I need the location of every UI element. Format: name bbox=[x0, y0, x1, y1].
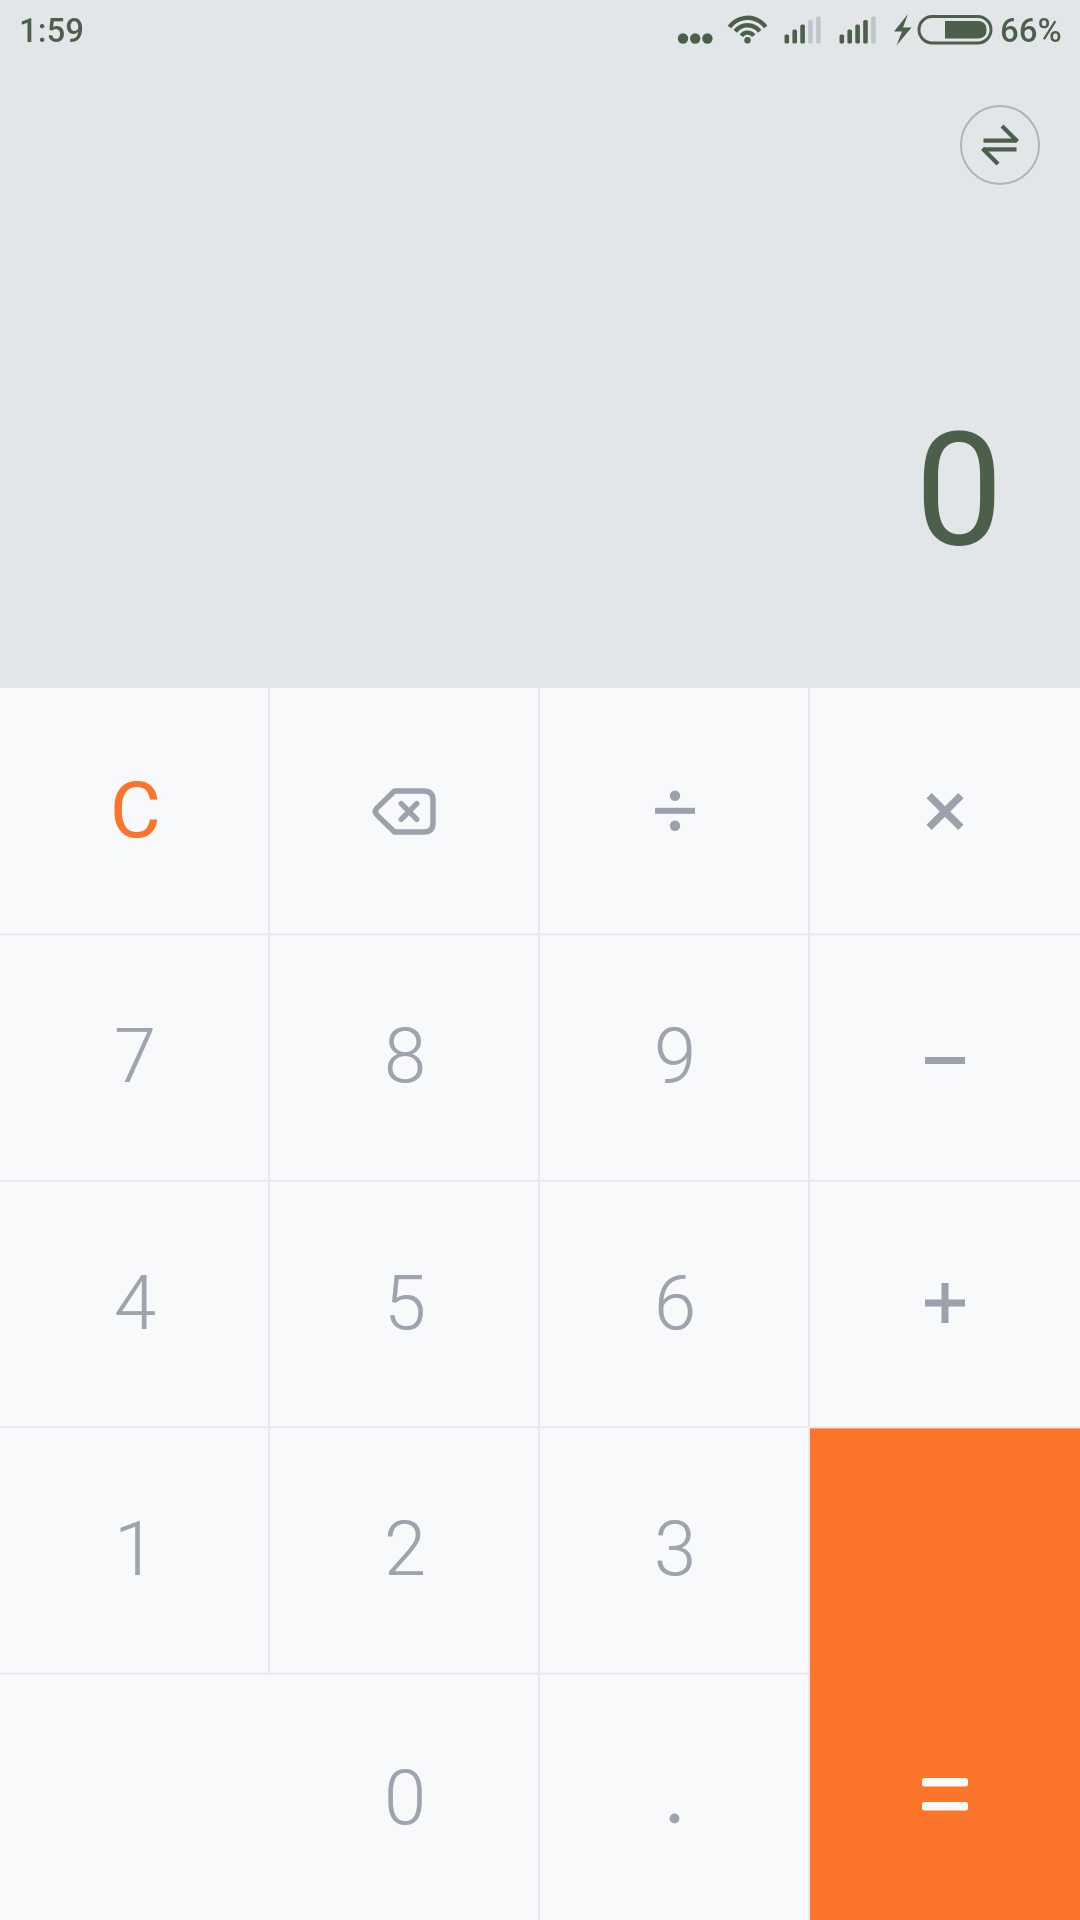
staticText: 8 bbox=[384, 1011, 427, 1100]
button[interactable]: Backspace bbox=[270, 688, 540, 935]
button[interactable]: Minus bbox=[810, 935, 1080, 1182]
button[interactable]: Decimal point bbox=[540, 1674, 810, 1920]
staticText: 7 bbox=[114, 1011, 157, 1100]
button[interactable]: 7 bbox=[0, 935, 270, 1182]
button[interactable]: 8 bbox=[270, 935, 540, 1182]
staticText: 66% bbox=[1000, 11, 1062, 50]
button[interactable]: Unit converter bbox=[958, 103, 1042, 187]
staticText: 0 bbox=[384, 1753, 427, 1842]
staticText: 3 bbox=[654, 1504, 697, 1593]
button[interactable]: Plus bbox=[810, 1182, 1080, 1428]
staticText: 1:59 bbox=[19, 11, 85, 50]
button[interactable]: 0 bbox=[0, 1674, 540, 1920]
button[interactable]: 6 bbox=[540, 1182, 810, 1428]
button[interactable]: 2 bbox=[270, 1428, 540, 1674]
staticText: 6 bbox=[654, 1258, 697, 1347]
button[interactable]: Divide bbox=[540, 688, 810, 935]
button[interactable]: 1 bbox=[0, 1428, 270, 1674]
button[interactable]: Equals bbox=[810, 1428, 1080, 1674]
button[interactable]: 5 bbox=[270, 1182, 540, 1428]
button[interactable]: 3 bbox=[540, 1428, 810, 1674]
staticText: 5 bbox=[384, 1258, 427, 1347]
staticText: 1 bbox=[114, 1504, 157, 1593]
staticText: 2 bbox=[384, 1504, 427, 1593]
staticText: C bbox=[110, 765, 161, 856]
staticText: 0 bbox=[915, 398, 1004, 582]
staticText: 4 bbox=[114, 1258, 157, 1347]
button[interactable]: Multiply bbox=[810, 688, 1080, 935]
button[interactable]: 9 bbox=[540, 935, 810, 1182]
staticText: 9 bbox=[654, 1011, 697, 1100]
button[interactable]: 4 bbox=[0, 1182, 270, 1428]
button[interactable]: Equals bbox=[810, 1674, 1080, 1920]
button[interactable]: C bbox=[0, 688, 270, 935]
